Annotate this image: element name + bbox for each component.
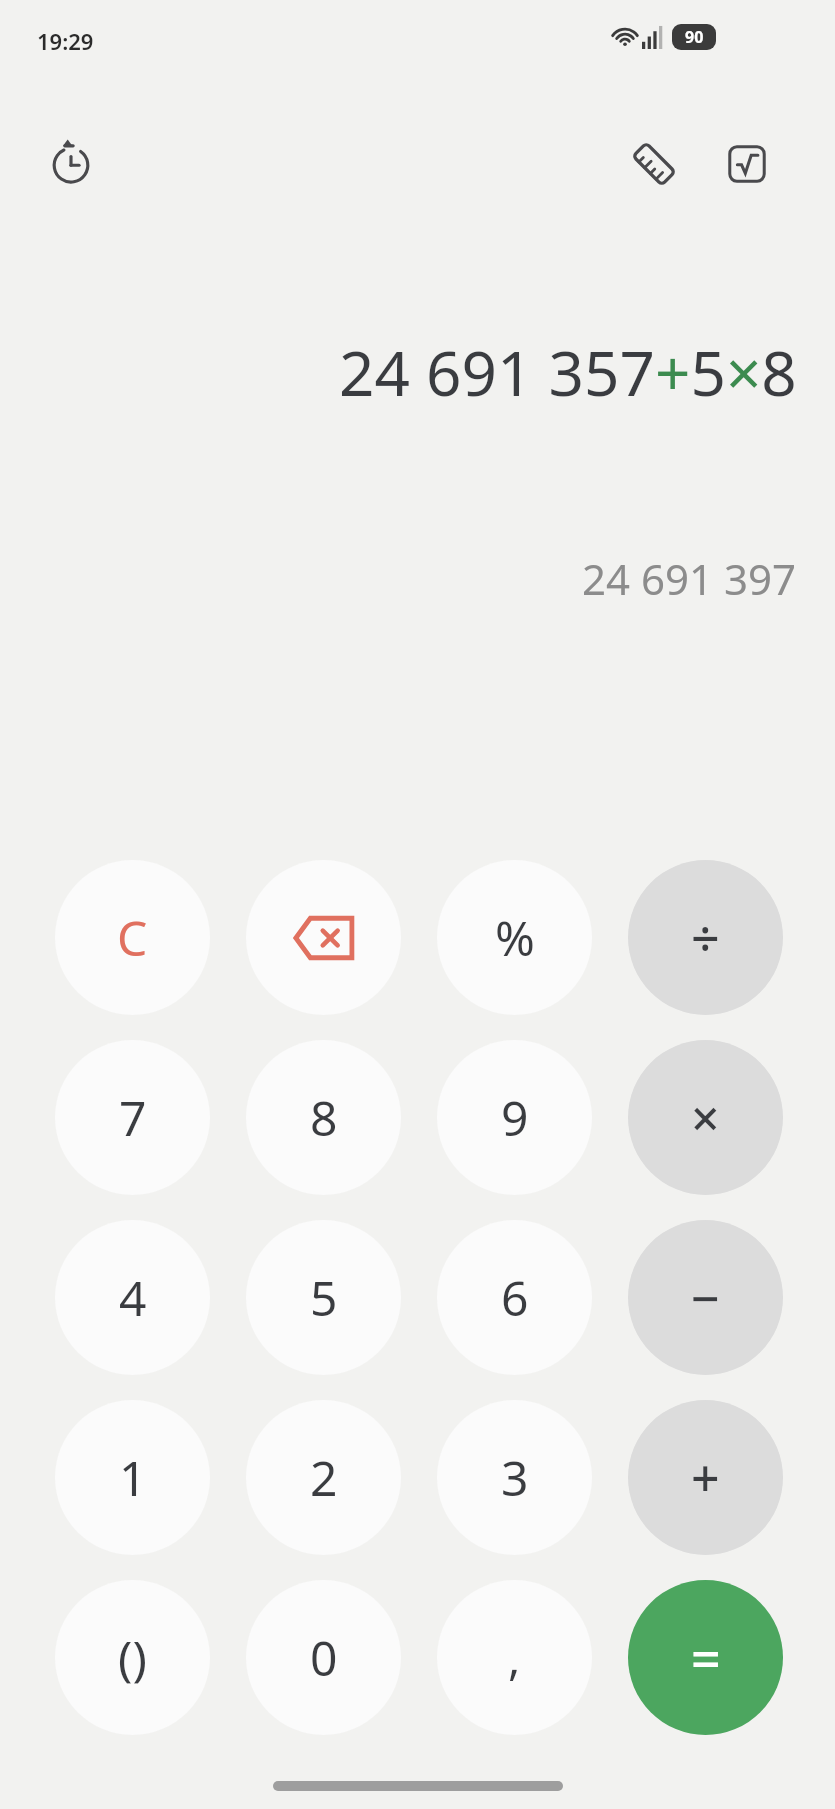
button[interactable]: C — [55, 860, 210, 1015]
button[interactable]: History — [40, 133, 102, 195]
button[interactable]: ÷ — [628, 860, 783, 1015]
staticText: × — [691, 1084, 720, 1152]
button[interactable]: 8 — [246, 1040, 401, 1195]
staticText: % — [495, 905, 535, 970]
staticText: 0 — [310, 1625, 338, 1690]
staticText: 3 — [501, 1445, 529, 1510]
staticText: − — [691, 1264, 720, 1332]
button[interactable]: Backspace — [246, 860, 401, 1015]
button[interactable]: Scientific calculator — [716, 133, 778, 195]
staticText: 1 — [119, 1445, 147, 1510]
staticText: , — [508, 1626, 521, 1689]
staticText: 8 — [310, 1085, 338, 1150]
button[interactable]: 6 — [437, 1220, 592, 1375]
staticText: 19:29 — [37, 26, 94, 56]
button[interactable]: , — [437, 1580, 592, 1735]
staticText: 4 — [119, 1265, 147, 1330]
button[interactable]: 7 — [55, 1040, 210, 1195]
button[interactable]: 3 — [437, 1400, 592, 1555]
button[interactable]: 1 — [55, 1400, 210, 1555]
button[interactable]: + — [628, 1400, 783, 1555]
button[interactable]: 4 — [55, 1220, 210, 1375]
staticText: 7 — [119, 1085, 147, 1150]
button[interactable]: 0 — [246, 1580, 401, 1735]
staticText: C — [117, 905, 148, 970]
staticText: 90 — [685, 26, 704, 48]
button[interactable]: × — [628, 1040, 783, 1195]
button[interactable]: 9 — [437, 1040, 592, 1195]
staticText: 9 — [501, 1085, 529, 1150]
staticText: ÷ — [691, 904, 720, 972]
button[interactable]: Unit converter — [623, 133, 685, 195]
button[interactable]: () — [55, 1580, 210, 1735]
staticText: + — [691, 1444, 720, 1512]
button[interactable]: 2 — [246, 1400, 401, 1555]
staticText: 5 — [310, 1265, 338, 1330]
button[interactable]: − — [628, 1220, 783, 1375]
button[interactable]: = — [628, 1580, 783, 1735]
button[interactable]: % — [437, 860, 592, 1015]
staticText: 2 — [310, 1445, 338, 1510]
staticText: = — [691, 1622, 721, 1693]
staticText: 24 691 397 — [582, 550, 797, 607]
staticText: () — [118, 1625, 147, 1690]
staticText: 24 691 357+5×8 — [339, 330, 797, 414]
button[interactable]: 5 — [246, 1220, 401, 1375]
staticText: 6 — [501, 1265, 529, 1330]
